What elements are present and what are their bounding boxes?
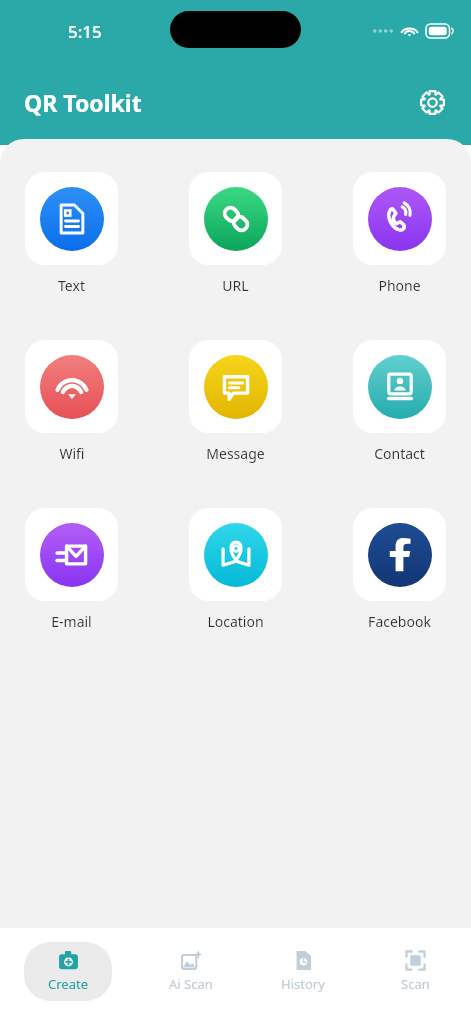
button[interactable]: URL xyxy=(189,172,282,295)
staticText: URL xyxy=(222,276,249,295)
staticText: Contact xyxy=(374,444,425,463)
button[interactable]: History xyxy=(257,942,349,1001)
staticText: Text xyxy=(58,276,85,295)
staticText: Scan xyxy=(401,975,430,993)
staticText: Wifi xyxy=(59,444,85,463)
button[interactable]: Phone xyxy=(353,172,446,295)
staticText: Location xyxy=(207,612,264,631)
staticText: History xyxy=(281,975,325,993)
button[interactable]: Create xyxy=(24,942,112,1001)
button[interactable]: Facebook xyxy=(353,508,446,631)
button[interactable]: Contact xyxy=(353,340,446,463)
button[interactable]: Ai Scan xyxy=(145,942,237,1001)
button[interactable]: Scan xyxy=(377,942,454,1001)
staticText: Message xyxy=(206,444,265,463)
button[interactable]: Message xyxy=(189,340,282,463)
staticText: 5:15 xyxy=(68,20,102,43)
button[interactable]: Location xyxy=(189,508,282,631)
staticText: Ai Scan xyxy=(169,975,213,993)
staticText: Phone xyxy=(378,276,421,295)
staticText: E-mail xyxy=(51,612,92,631)
button[interactable]: Wifi xyxy=(25,340,118,463)
staticText: QR Toolkit xyxy=(24,87,142,118)
button[interactable]: Text xyxy=(25,172,118,295)
staticText: Facebook xyxy=(368,612,431,631)
staticText: Create xyxy=(48,975,88,993)
button[interactable]: E-mail xyxy=(25,508,118,631)
button[interactable]: Settings xyxy=(411,81,453,123)
